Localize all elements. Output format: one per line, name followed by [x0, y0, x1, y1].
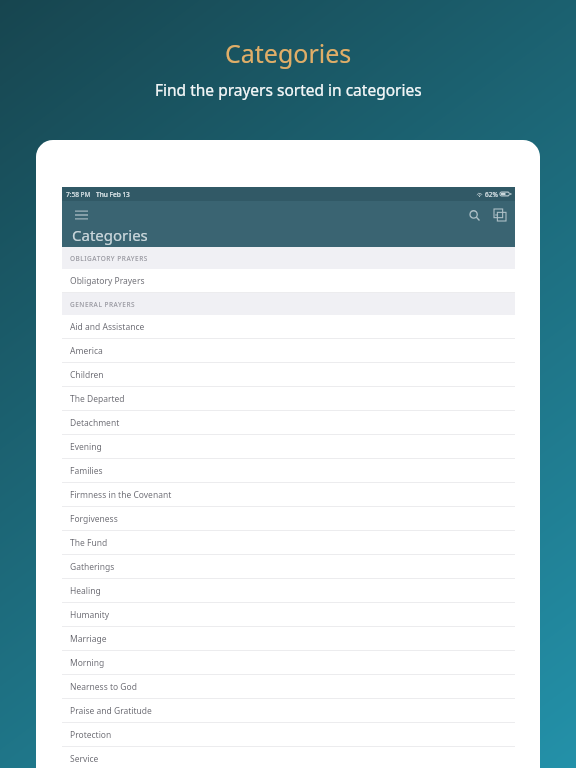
staticText: Healing: [70, 585, 101, 597]
staticText: The Fund: [70, 537, 108, 549]
button[interactable]: America: [62, 339, 515, 363]
staticText: Detachment: [70, 417, 120, 429]
button[interactable]: Healing: [62, 579, 515, 603]
staticText: Humanity: [70, 609, 110, 621]
button[interactable]: Evening: [62, 435, 515, 459]
button[interactable]: Search: [463, 204, 485, 226]
staticText: OBLIGATORY PRAYERS: [70, 254, 148, 263]
staticText: Firmness in the Covenant: [70, 489, 172, 501]
staticText: The Departed: [70, 393, 125, 405]
button[interactable]: Gatherings: [62, 555, 515, 579]
staticText: Thu Feb 13: [96, 190, 130, 199]
staticText: Evening: [70, 441, 102, 453]
staticText: Protection: [70, 729, 112, 741]
staticText: 7:58 PM: [66, 190, 91, 199]
button[interactable]: Children: [62, 363, 515, 387]
staticText: Service: [70, 753, 99, 765]
button[interactable]: Marriage: [62, 627, 515, 651]
button[interactable]: Humanity: [62, 603, 515, 627]
staticText: 62%: [485, 190, 498, 199]
staticText: America: [70, 345, 103, 357]
staticText: Praise and Gratitude: [70, 705, 152, 717]
button[interactable]: Protection: [62, 723, 515, 747]
staticText: Obligatory Prayers: [70, 275, 145, 287]
button[interactable]: Firmness in the Covenant: [62, 483, 515, 507]
button[interactable]: Open navigation menu: [70, 204, 92, 226]
button[interactable]: Nearness to God: [62, 675, 515, 699]
button[interactable]: The Departed: [62, 387, 515, 411]
staticText: Find the prayers sorted in categories: [155, 79, 422, 100]
staticText: GENERAL PRAYERS: [70, 300, 136, 309]
button[interactable]: Praise and Gratitude: [62, 699, 515, 723]
button[interactable]: Aid and Assistance: [62, 315, 515, 339]
staticText: Categories: [72, 225, 148, 245]
staticText: Nearness to God: [70, 681, 137, 693]
staticText: Morning: [70, 657, 105, 669]
button[interactable]: Translate language: [489, 204, 511, 226]
staticText: Categories: [225, 36, 352, 70]
staticText: Children: [70, 369, 104, 381]
button[interactable]: Families: [62, 459, 515, 483]
button[interactable]: Service: [62, 747, 515, 768]
button[interactable]: Forgiveness: [62, 507, 515, 531]
staticText: Marriage: [70, 633, 107, 645]
staticText: Families: [70, 465, 103, 477]
button[interactable]: Detachment: [62, 411, 515, 435]
staticText: Forgiveness: [70, 513, 118, 525]
staticText: Aid and Assistance: [70, 321, 145, 333]
button[interactable]: The Fund: [62, 531, 515, 555]
staticText: Gatherings: [70, 561, 115, 573]
button[interactable]: Morning: [62, 651, 515, 675]
button[interactable]: Obligatory Prayers: [62, 269, 515, 293]
